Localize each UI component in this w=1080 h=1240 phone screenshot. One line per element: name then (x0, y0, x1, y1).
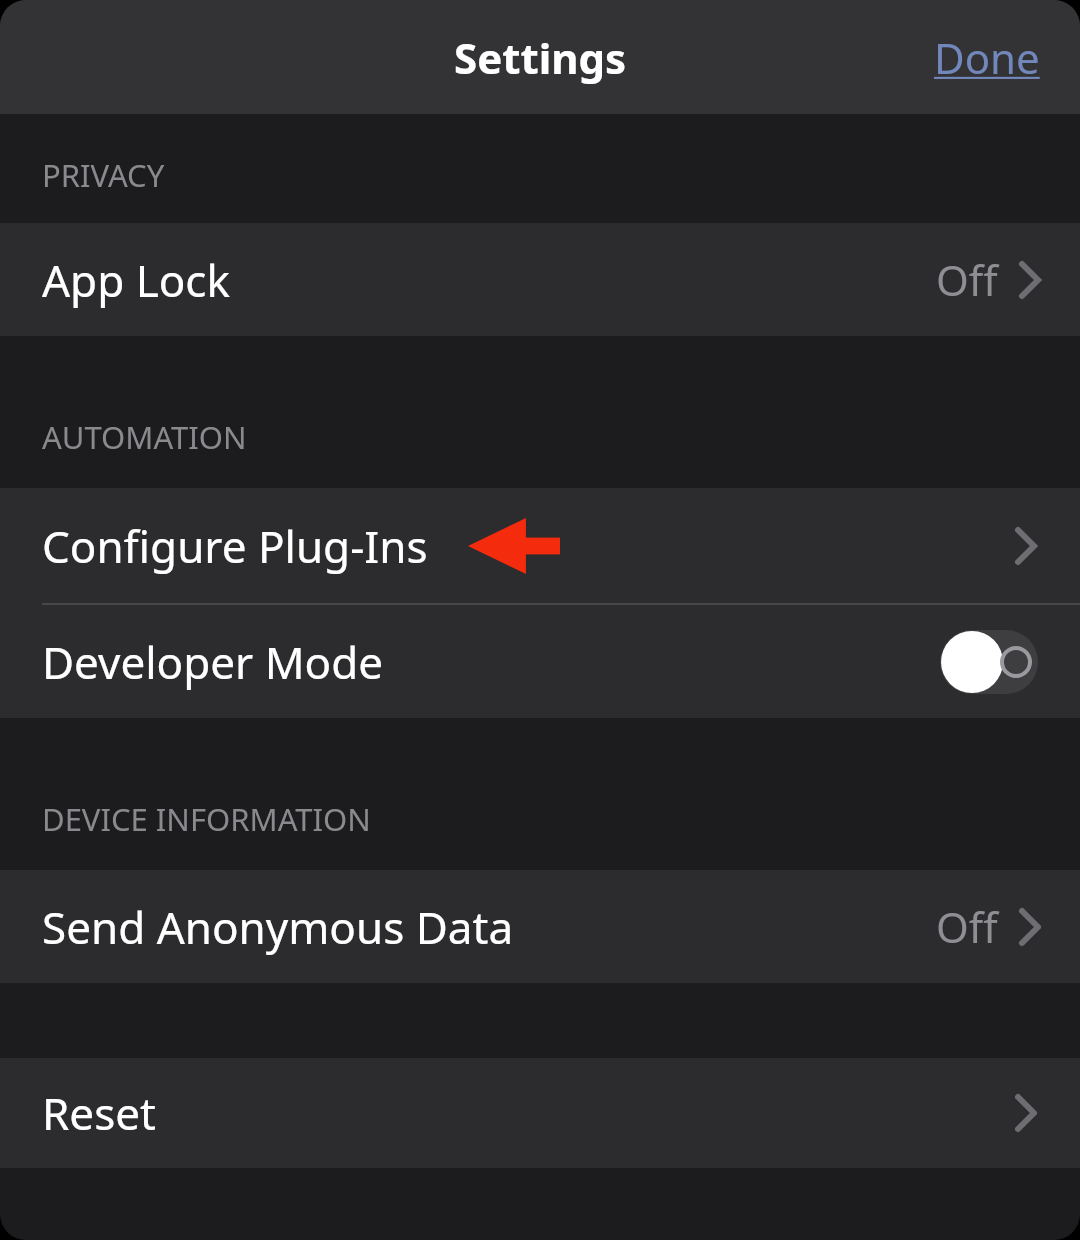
staticText: AUTOMATION (42, 416, 247, 458)
staticText: DEVICE INFORMATION (42, 798, 371, 840)
staticText: Configure Plug-Ins (42, 516, 428, 576)
staticText: Settings (454, 29, 627, 86)
button[interactable]: Reset (0, 1058, 1080, 1168)
button[interactable]: Send Anonymous Data (0, 870, 1080, 983)
other: Developer Mode toggle, off (940, 630, 1038, 694)
staticText: Off (936, 251, 998, 308)
button[interactable]: Configure Plug-Ins (0, 488, 1080, 603)
button[interactable]: Done (894, 7, 1080, 108)
staticText: App Lock (42, 250, 230, 310)
button[interactable]: App Lock (0, 223, 1080, 336)
staticText: Reset (42, 1083, 156, 1143)
staticText: Done (934, 29, 1040, 86)
other: Pointer (468, 518, 560, 574)
staticText: Off (936, 898, 998, 955)
button[interactable]: Developer Mode (0, 605, 1080, 718)
staticText: Developer Mode (42, 632, 384, 692)
staticText: Send Anonymous Data (42, 897, 514, 957)
staticText: PRIVACY (42, 154, 165, 196)
